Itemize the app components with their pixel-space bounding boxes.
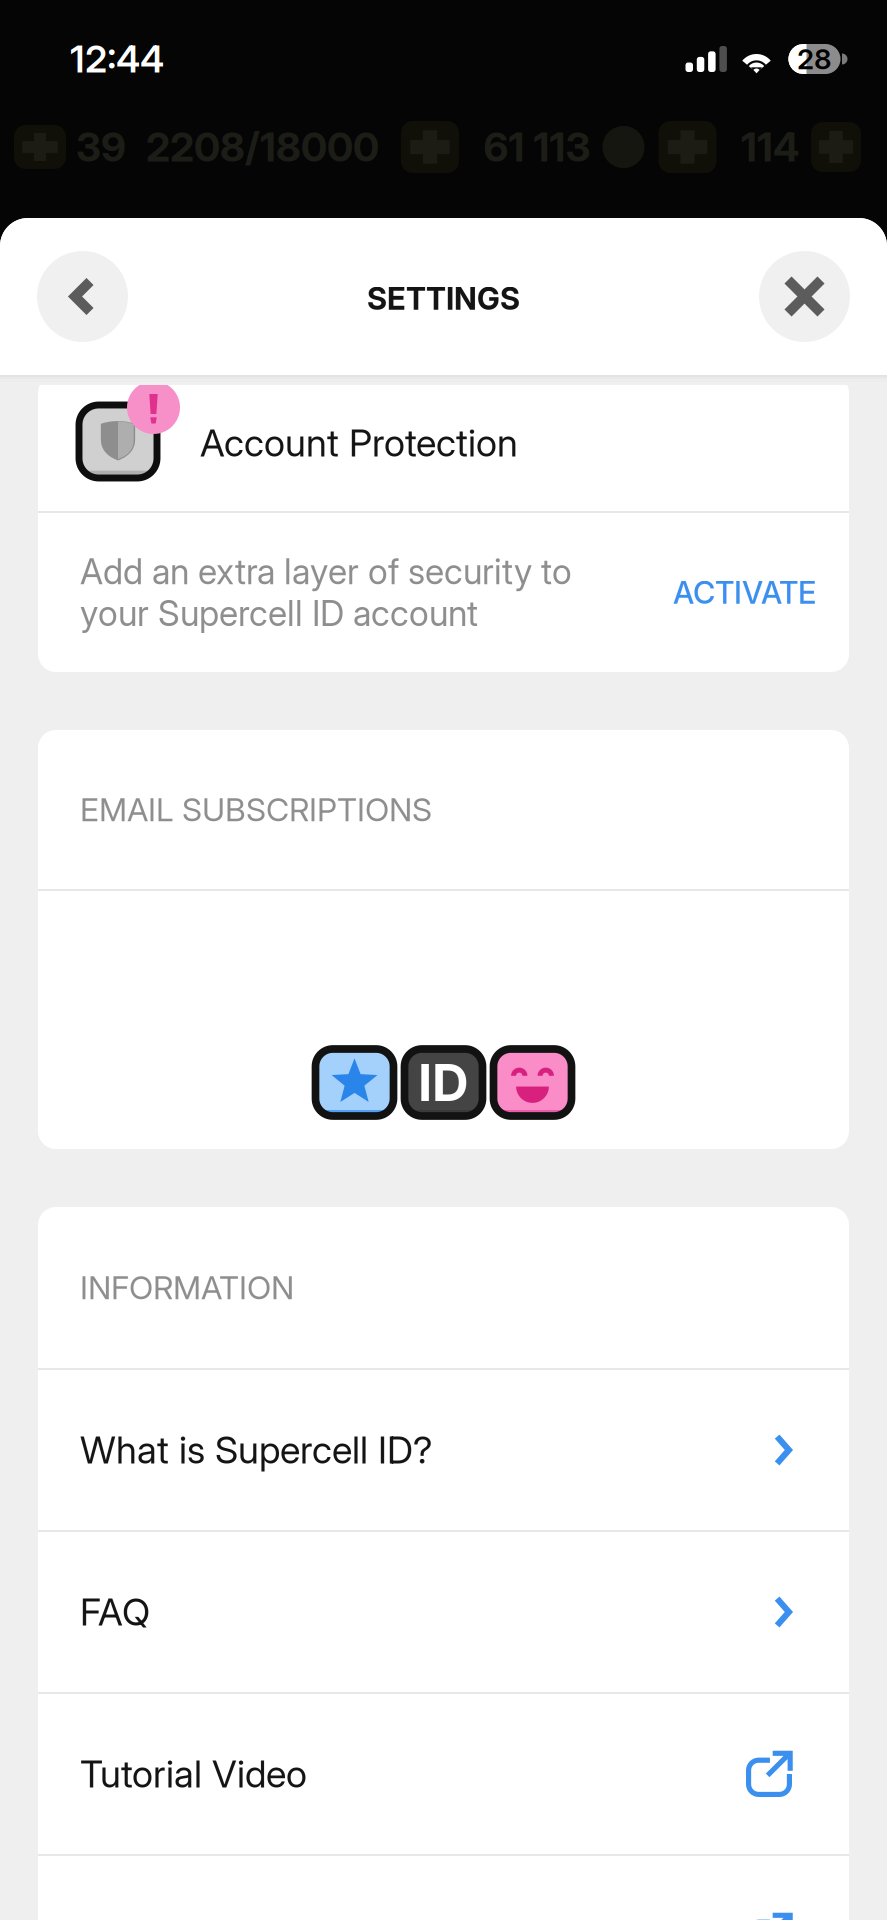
button[interactable]: Tutorial Video [38,1694,849,1854]
button[interactable]: Back [37,251,128,342]
staticText: Account Protection [200,420,518,466]
staticText: 2208/18000 [146,123,379,171]
button[interactable]: Close [759,251,850,342]
staticText: Tutorial Video [80,1751,307,1797]
staticText: Add an extra layer of security to your S… [80,551,572,634]
button[interactable]: Help Center [38,1856,849,1920]
button[interactable]: What is Supercell ID? [38,1370,849,1530]
staticText: ID [418,1052,469,1113]
staticText: INFORMATION [80,1268,294,1307]
button[interactable]: ACTIVATE [673,574,816,611]
staticText: FAQ [80,1589,150,1635]
staticText: 61 113 [483,123,590,171]
staticText: What is Supercell ID? [80,1427,432,1473]
staticText: ACTIVATE [673,574,816,611]
staticText: SETTINGS [367,280,520,317]
staticText: EMAIL SUBSCRIPTIONS [80,790,432,829]
button[interactable]: FAQ [38,1532,849,1692]
staticText: 12:44 [70,36,164,82]
staticText: 114 [741,123,799,171]
staticText: 28 [797,42,832,76]
staticText: 39 [76,123,126,171]
